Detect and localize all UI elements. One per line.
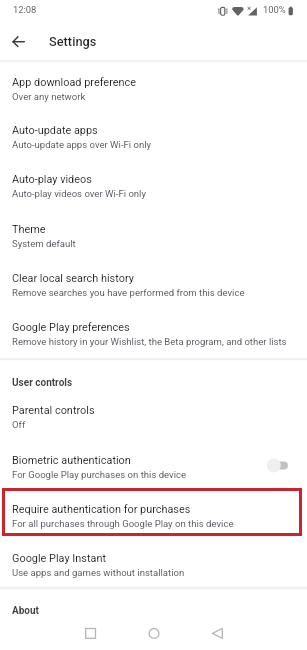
button[interactable]: Auto-update apps	[0, 124, 307, 173]
staticText: Auto-update apps	[12, 124, 98, 137]
button[interactable]: Google Play preferences	[0, 321, 307, 370]
staticText: System default	[12, 238, 76, 249]
staticText: Settings	[49, 34, 97, 49]
button[interactable]: Back	[7, 30, 31, 54]
staticText: 12:08	[13, 4, 37, 15]
staticText: Biometric authentication	[12, 454, 131, 467]
staticText: Off	[12, 419, 26, 430]
staticText: About	[12, 605, 39, 617]
staticText: User controls	[12, 377, 73, 389]
staticText: 100%	[263, 4, 286, 15]
button[interactable]: Biometric authentication toggle	[266, 455, 292, 475]
button[interactable]: Auto-play videos	[0, 173, 307, 222]
button[interactable]: Biometric authentication	[0, 454, 307, 503]
button[interactable]: Clear local search history	[0, 272, 307, 321]
staticText: Auto-play videos	[12, 173, 92, 186]
staticText: Over any network	[12, 91, 86, 102]
staticText: Use apps and games without installation	[12, 567, 185, 578]
staticText: Parental controls	[12, 404, 95, 417]
staticText: App download preference	[12, 76, 136, 89]
staticText: Google Play preferences	[12, 321, 130, 334]
staticText: Clear local search history	[12, 272, 134, 285]
button[interactable]: Require authentication for purchases	[0, 503, 307, 552]
staticText: Google Play Instant	[12, 552, 106, 565]
staticText: For all purchases through Google Play on…	[12, 518, 234, 529]
button[interactable]: Parental controls	[0, 404, 307, 453]
staticText: Remove history in your Wishlist, the Bet…	[12, 336, 287, 347]
staticText: Auto-update apps over Wi-Fi only	[12, 139, 152, 150]
staticText: Remove searches you have performed from …	[12, 287, 245, 298]
staticText: Require authentication for purchases	[12, 503, 191, 516]
staticText: Theme	[12, 223, 46, 236]
button[interactable]: App download preference	[0, 76, 307, 125]
staticText: Auto-play videos over Wi-Fi only	[12, 188, 146, 199]
staticText: For Google Play purchases on this device	[12, 469, 187, 480]
button[interactable]: Google Play Instant	[0, 552, 307, 601]
button[interactable]: Theme	[0, 223, 307, 272]
